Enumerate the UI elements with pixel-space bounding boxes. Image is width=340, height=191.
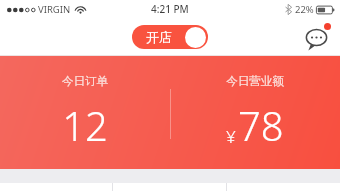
button[interactable]: 今日订单 [0,56,170,169]
button[interactable]: Messages [302,22,332,52]
staticText: 今日订单 [62,74,108,88]
staticText: VIRGIN [38,3,71,16]
button[interactable]: 开店 [132,25,208,49]
staticText: 今日营业额 [226,74,284,88]
staticText: 开店 [146,29,172,45]
button[interactable]: 今日营业额 [170,56,340,169]
staticText: 22% [295,3,314,16]
staticText: 4:21 PM [151,2,189,16]
staticText: 78 [238,98,284,152]
staticText: ¥ [226,125,236,148]
staticText: 12 [62,98,108,152]
